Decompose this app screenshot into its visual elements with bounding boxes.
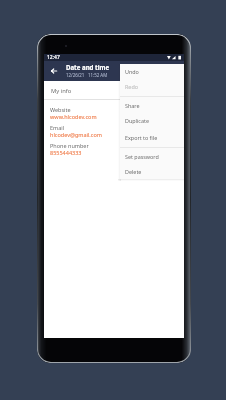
- button[interactable]: Back: [47, 64, 61, 78]
- button[interactable]: Delete: [120, 164, 184, 179]
- staticText: hlcodev@gmail.com: [50, 131, 102, 138]
- staticText: Undo: [125, 68, 139, 75]
- staticText: Share: [125, 102, 140, 109]
- staticText: Phone number: [50, 142, 89, 149]
- staticText: My info: [51, 87, 72, 95]
- button[interactable]: Phone number: [44, 140, 184, 158]
- staticText: Export to file: [125, 134, 158, 141]
- staticText: 8555444333: [50, 149, 82, 156]
- button[interactable]: Email: [44, 122, 184, 140]
- staticText: Duplicate: [125, 117, 149, 124]
- staticText: 12/26/21: [66, 72, 85, 78]
- staticText: www.hlcodev.com: [50, 113, 97, 120]
- button[interactable]: Export to file: [120, 130, 184, 145]
- button[interactable]: Redo: [120, 79, 184, 94]
- staticText: 11:52 AM: [88, 72, 108, 78]
- button[interactable]: Share: [120, 98, 184, 113]
- staticText: Set password: [125, 153, 159, 160]
- staticText: 12:47: [47, 54, 60, 61]
- button[interactable]: My info: [44, 81, 184, 99]
- button[interactable]: Undo: [120, 64, 184, 79]
- button[interactable]: Duplicate: [120, 113, 184, 128]
- staticText: Redo: [125, 83, 138, 90]
- staticText: Delete: [125, 168, 142, 175]
- button[interactable]: Website: [44, 104, 184, 122]
- button[interactable]: Set password: [120, 149, 184, 164]
- staticText: Date and time: [66, 63, 110, 71]
- staticText: Website: [50, 106, 71, 113]
- staticText: Email: [50, 124, 65, 131]
